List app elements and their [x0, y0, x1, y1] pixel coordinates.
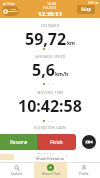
staticText: Record Trail: [42, 172, 60, 176]
staticText: Explore: [11, 172, 23, 176]
staticText: PAUSED: [43, 6, 57, 10]
staticText: 15:46: [47, 1, 56, 6]
staticText: Tracking: [8, 10, 18, 13]
button[interactable]: Map: [77, 5, 95, 14]
staticText: 12:30:15: [38, 10, 62, 18]
staticText: Finish: [50, 139, 63, 145]
staticText: AVERAGE SPEED: [35, 54, 66, 59]
button[interactable]: Camera: [82, 135, 96, 149]
button[interactable]: Resume: [0, 134, 37, 150]
button[interactable]: Explore: [0, 162, 34, 178]
staticText: DISTANCE: [41, 23, 60, 28]
staticText: Telya: [7, 1, 16, 6]
staticText: ELEVATION GAIN: [34, 125, 66, 130]
staticText: Profile: [79, 172, 89, 176]
button[interactable]: Live: [2, 6, 19, 16]
staticText: Resume: [10, 139, 28, 145]
staticText: km/h: [55, 71, 69, 78]
staticText: 53%: [88, 1, 94, 5]
staticText: km: [67, 40, 75, 47]
staticText: 5,6: [32, 59, 55, 81]
staticText: 59,72: [25, 28, 67, 50]
button[interactable]: Profile: [67, 162, 100, 178]
button[interactable]: Finish: [37, 134, 76, 150]
button[interactable]: Record Trail: [34, 162, 67, 178]
staticText: Map: [81, 6, 92, 13]
staticText: 10:42:58: [18, 95, 82, 117]
staticText: Live: [11, 8, 16, 11]
staticText: Show Elevation: [36, 156, 65, 161]
staticText: MOVING TIME: [37, 90, 64, 95]
